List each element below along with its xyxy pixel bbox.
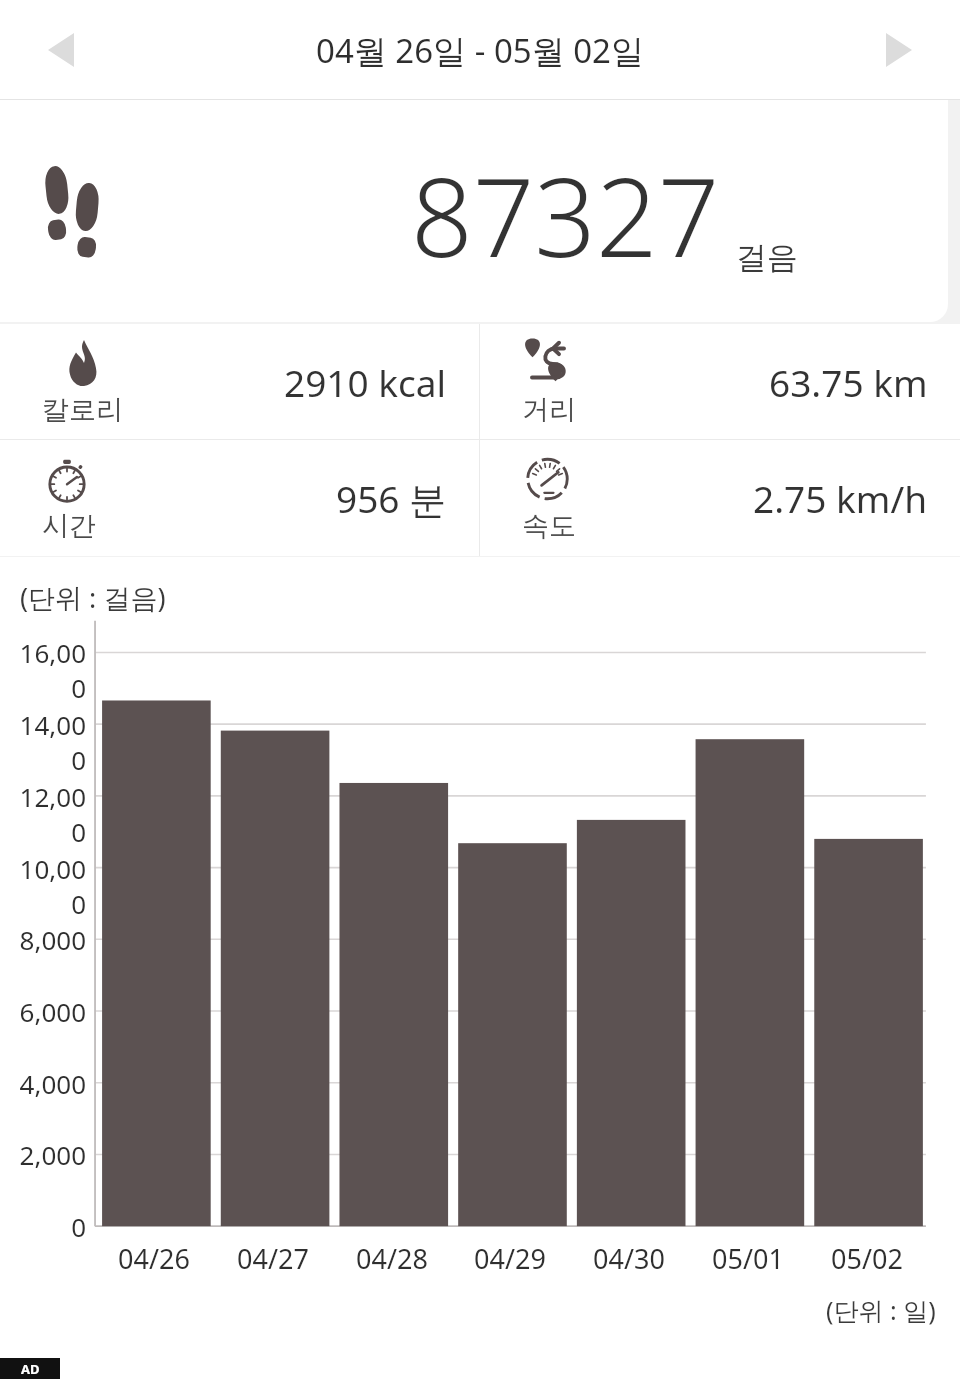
staticText: 8,000 — [8, 922, 86, 957]
staticText: 12,000 — [8, 779, 86, 849]
staticText: 14,000 — [8, 707, 86, 777]
staticText: 칼로리 — [42, 393, 123, 427]
staticText: 2.75 km/h — [753, 473, 928, 523]
button[interactable]: 칼로리 — [0, 324, 479, 439]
staticText: 거리 — [522, 393, 576, 427]
button[interactable]: 87327 — [0, 100, 948, 322]
button[interactable]: Previous week — [30, 19, 92, 81]
staticText: 4,000 — [8, 1066, 86, 1101]
button[interactable]: Next week — [868, 19, 930, 81]
button[interactable]: 거리 — [480, 324, 960, 439]
staticText: (단위 : 걸음) — [20, 579, 166, 616]
staticText: 04/28 — [340, 1240, 444, 1277]
staticText: AD — [21, 1360, 40, 1378]
staticText: 05/01 — [696, 1240, 800, 1277]
staticText: 6,000 — [8, 994, 86, 1029]
button[interactable]: AD — [0, 1358, 60, 1379]
staticText: (단위 : 일) — [826, 1293, 936, 1327]
staticText: 2,000 — [8, 1137, 86, 1172]
staticText: 속도 — [522, 509, 576, 543]
staticText: 04/26 — [102, 1240, 206, 1277]
staticText: 걸음 — [736, 238, 798, 277]
staticText: 0 — [8, 1209, 86, 1244]
button[interactable]: 시간 — [0, 440, 479, 556]
button[interactable]: 속도 — [480, 440, 960, 556]
staticText: 04/29 — [458, 1240, 562, 1277]
staticText: 04/30 — [577, 1240, 681, 1277]
staticText: 2910 kcal — [284, 357, 447, 407]
staticText: 04월 26일 - 05월 02일 — [316, 28, 644, 73]
staticText: 16,000 — [8, 635, 86, 705]
staticText: 87327 — [411, 142, 720, 289]
staticText: 05/02 — [815, 1240, 919, 1277]
staticText: 956 분 — [336, 473, 447, 524]
staticText: 04/27 — [221, 1240, 325, 1277]
staticText: 10,000 — [8, 851, 86, 921]
staticText: 63.75 km — [769, 357, 928, 407]
staticText: 시간 — [42, 509, 96, 543]
